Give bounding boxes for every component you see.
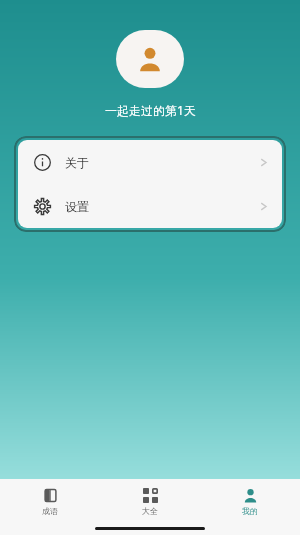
button[interactable]: 我的 bbox=[200, 479, 300, 521]
button[interactable]: 设置 bbox=[18, 184, 282, 228]
button[interactable]: Avatar bbox=[116, 30, 184, 88]
staticText: 成语 bbox=[42, 506, 58, 516]
staticText: 大全 bbox=[142, 506, 158, 516]
staticText: 一起走过的第1天 bbox=[105, 102, 196, 118]
button[interactable]: 大全 bbox=[100, 479, 200, 521]
staticText: 设置 bbox=[65, 199, 89, 214]
button[interactable]: 成语 bbox=[0, 479, 100, 521]
staticText: 关于 bbox=[65, 155, 89, 170]
button[interactable]: 关于 bbox=[18, 140, 282, 184]
staticText: 我的 bbox=[242, 506, 258, 516]
